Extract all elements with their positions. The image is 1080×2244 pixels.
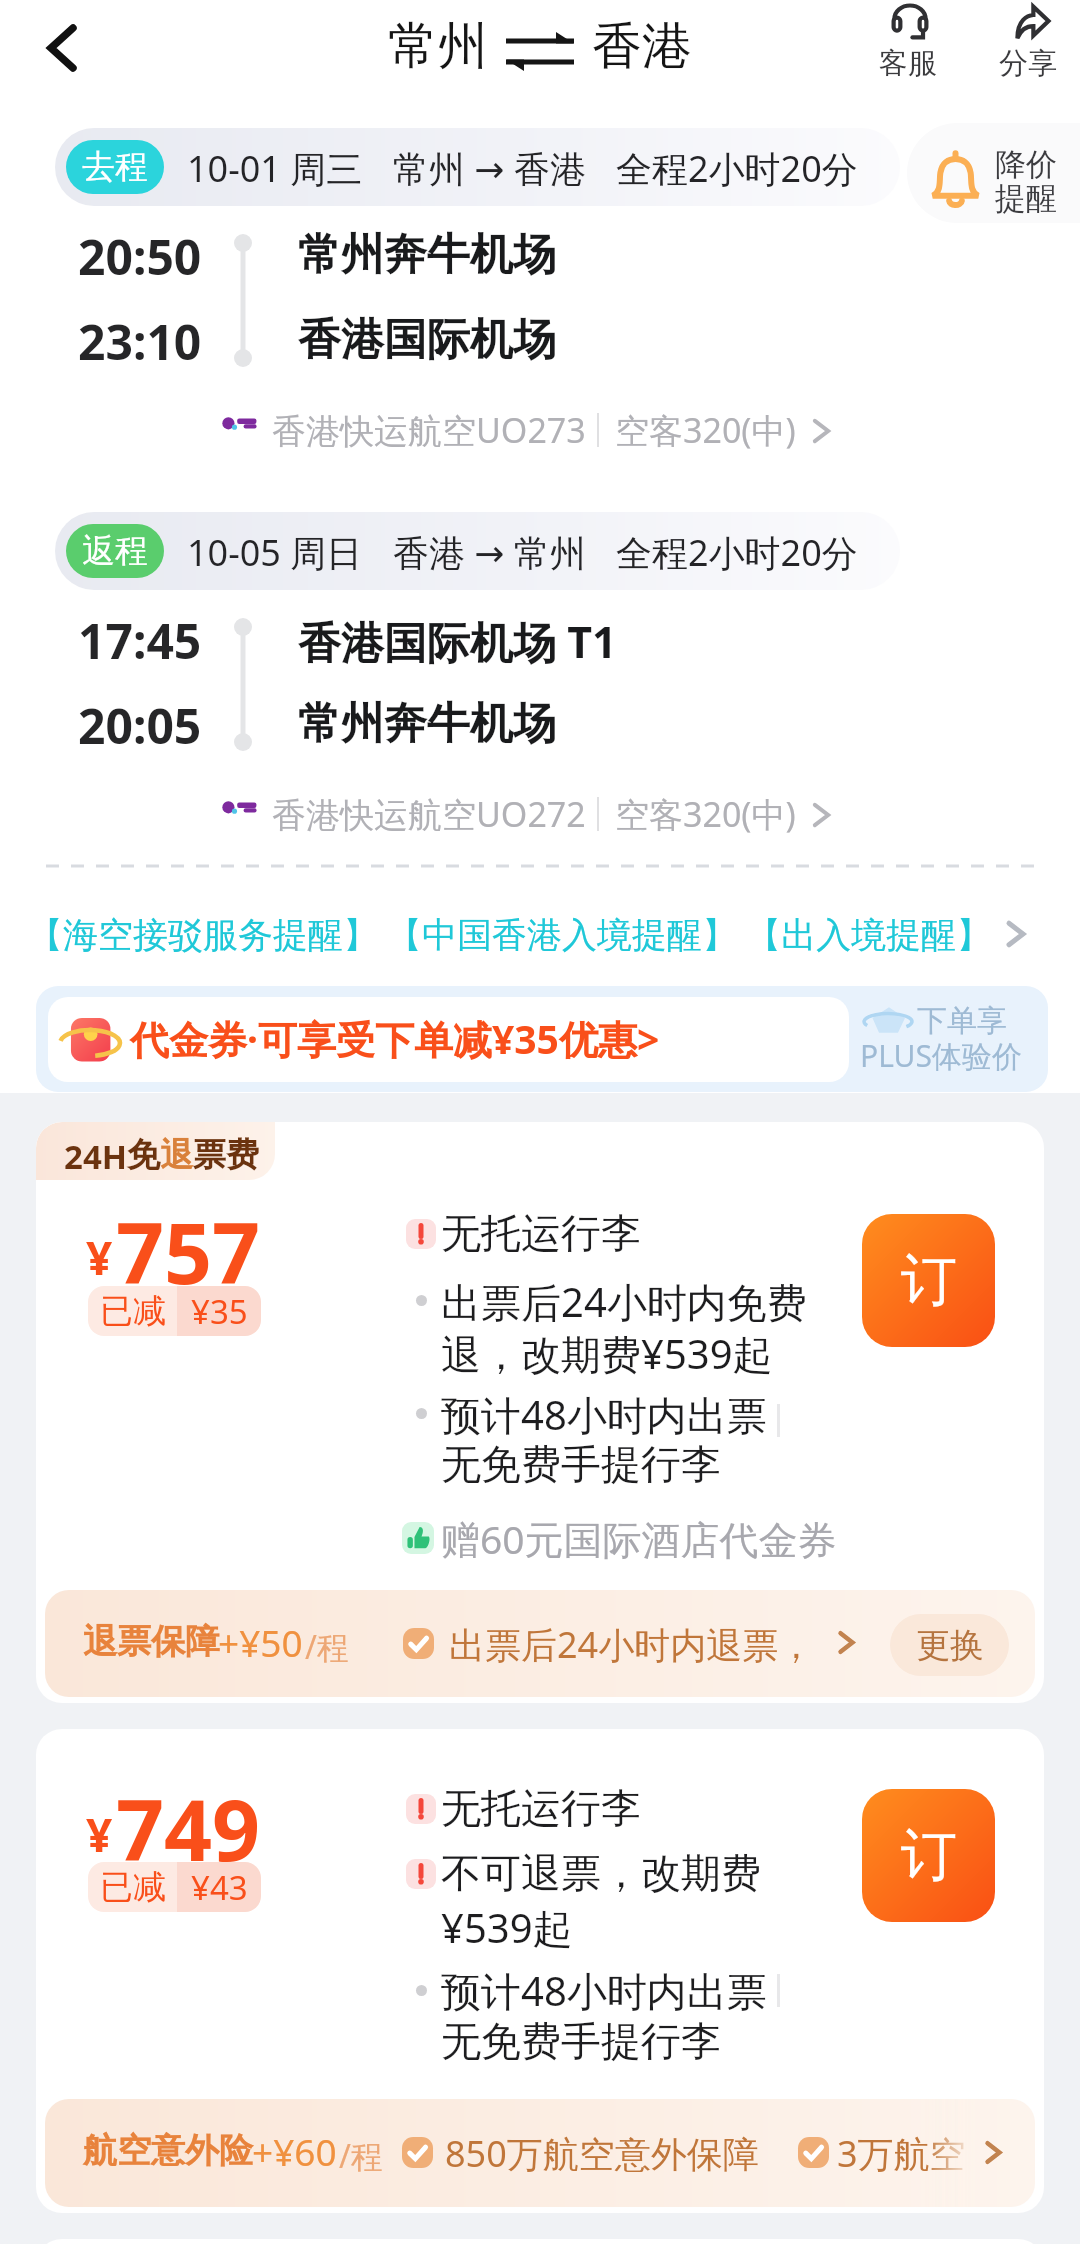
staticText: 提醒 (995, 179, 1057, 218)
staticText: 香港 (592, 15, 692, 78)
staticText: 返程 (82, 530, 148, 572)
staticText: ¥43 (191, 1865, 248, 1910)
staticText: 空客320(中) (615, 791, 796, 837)
staticText: ¥35 (191, 1289, 248, 1334)
staticText: 全程2小时20分 (616, 144, 858, 193)
staticText: 降价 (995, 145, 1057, 184)
staticText: 850万航空意外保障 (445, 2129, 759, 2178)
staticText: 香港快运航空UO273 (272, 407, 586, 453)
staticText: 10-05 周日 (187, 528, 363, 577)
button[interactable]: 香港快运航空UO272 (0, 780, 1080, 848)
button[interactable]: Back (16, 7, 108, 99)
staticText: 预计48小时内出票 (441, 1387, 767, 1442)
staticText: 空客320(中) (615, 407, 796, 453)
staticText: 香港 → 常州 (393, 528, 586, 577)
button[interactable]: 更换 (890, 1614, 1009, 1676)
button[interactable]: 订 (862, 1214, 995, 1347)
staticText: ¥539起 (441, 1900, 573, 1955)
staticText: 常州 (388, 15, 488, 78)
staticText: 退 (160, 1134, 193, 1176)
staticText: 客服 (879, 45, 937, 82)
staticText: 赠60元国际酒店代金券 (441, 1512, 837, 1565)
staticText: 749 (116, 1771, 261, 1885)
staticText: 退，改期费¥539起 (441, 1326, 773, 1381)
staticText: +¥50 (218, 1617, 303, 1667)
staticText: 【海空接驳服务提醒】 【中国香港入境提醒】 【出入境提醒】 (28, 910, 992, 958)
staticText: 757 (116, 1194, 261, 1308)
staticText: 全程2小时20分 (616, 528, 858, 577)
staticText: 24H (64, 1134, 127, 1179)
staticText: 不可退票，改期费 (441, 1848, 761, 1898)
button[interactable]: 分享 (969, 0, 1080, 100)
staticText: PLUS体验价 (860, 1035, 1022, 1076)
button[interactable]: 订 (862, 1789, 995, 1922)
staticText: 免 (127, 1134, 160, 1176)
staticText: /程 (339, 2134, 383, 2178)
staticText: 去程 (82, 146, 148, 188)
staticText: ¥ (86, 1803, 113, 1866)
staticText: 3万航空 (837, 2129, 966, 2178)
staticText: 香港快运航空UO272 (272, 791, 586, 837)
staticText: 订 (901, 1245, 957, 1316)
button[interactable]: 降价 (907, 123, 1080, 223)
button[interactable]: 航空意外险 (45, 2099, 1035, 2207)
staticText: 无免费手提行李 (441, 1439, 721, 1489)
staticText: 订 (901, 1820, 957, 1891)
button[interactable]: 【海空接驳服务提醒】 【中国香港入境提醒】 【出入境提醒】 (0, 896, 1080, 976)
button[interactable]: 香港快运航空UO273 (0, 396, 1080, 464)
staticText: /程 (305, 1625, 349, 1669)
staticText: 预计48小时内出票 (441, 1963, 767, 2018)
staticText: 出票后24小时内退票， (449, 1620, 815, 1669)
staticText: ¥ (86, 1226, 113, 1289)
staticText: 退票保障 (83, 1620, 219, 1663)
staticText: 下单享 (917, 1002, 1007, 1040)
staticText: 20:50 (78, 224, 202, 289)
staticText: 23:10 (78, 309, 202, 374)
staticText: 10-01 周三 (187, 144, 363, 193)
button[interactable]: 退票保障 (45, 1590, 1035, 1697)
staticText: 已减 (100, 1290, 166, 1332)
staticText: 更换 (916, 1624, 984, 1667)
button[interactable]: 代金券·可享受下单减¥35优惠> (36, 986, 1048, 1092)
staticText: 无免费手提行李 (441, 2016, 721, 2066)
staticText: +¥60 (252, 2126, 337, 2176)
staticText: 常州奔牛机场 (298, 697, 556, 751)
staticText: 分享 (999, 45, 1057, 82)
staticText: 20:05 (78, 693, 202, 758)
staticText: 已减 (100, 1866, 166, 1908)
staticText: 常州奔牛机场 (298, 228, 556, 282)
staticText: 无托运行李 (441, 1208, 641, 1258)
staticText: 票费 (193, 1134, 259, 1176)
staticText: 17:45 (78, 608, 202, 673)
button[interactable]: 客服 (849, 0, 969, 100)
staticText: 常州 → 香港 (393, 144, 586, 193)
staticText: 香港国际机场 (298, 313, 556, 367)
staticText: 无托运行李 (441, 1783, 641, 1833)
staticText: 香港国际机场 T1 (298, 612, 617, 671)
staticText: 出票后24小时内免费 (441, 1274, 807, 1329)
staticText: 航空意外险 (83, 2129, 253, 2172)
staticText: 代金券·可享受下单减¥35优惠> (130, 1012, 660, 1065)
